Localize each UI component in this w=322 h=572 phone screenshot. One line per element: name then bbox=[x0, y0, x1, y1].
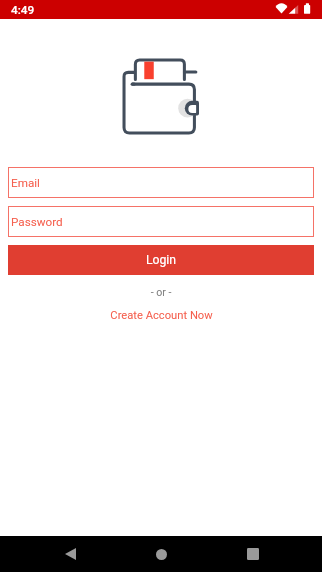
button[interactable]: Home bbox=[139, 536, 183, 572]
staticText: Create Account Now bbox=[110, 309, 213, 322]
button[interactable]: Password bbox=[8, 206, 314, 237]
button[interactable]: Recent apps bbox=[231, 536, 275, 572]
staticText: - or - bbox=[0, 286, 322, 298]
staticText: Email bbox=[11, 176, 40, 190]
button[interactable]: Back bbox=[48, 536, 92, 572]
staticText: Login bbox=[146, 253, 177, 267]
staticText: Password bbox=[11, 215, 63, 229]
button[interactable]: Login bbox=[8, 245, 314, 275]
button[interactable]: Email bbox=[8, 167, 314, 198]
button[interactable]: Create Account Now bbox=[102, 307, 221, 324]
staticText: 4:49 bbox=[11, 3, 35, 17]
